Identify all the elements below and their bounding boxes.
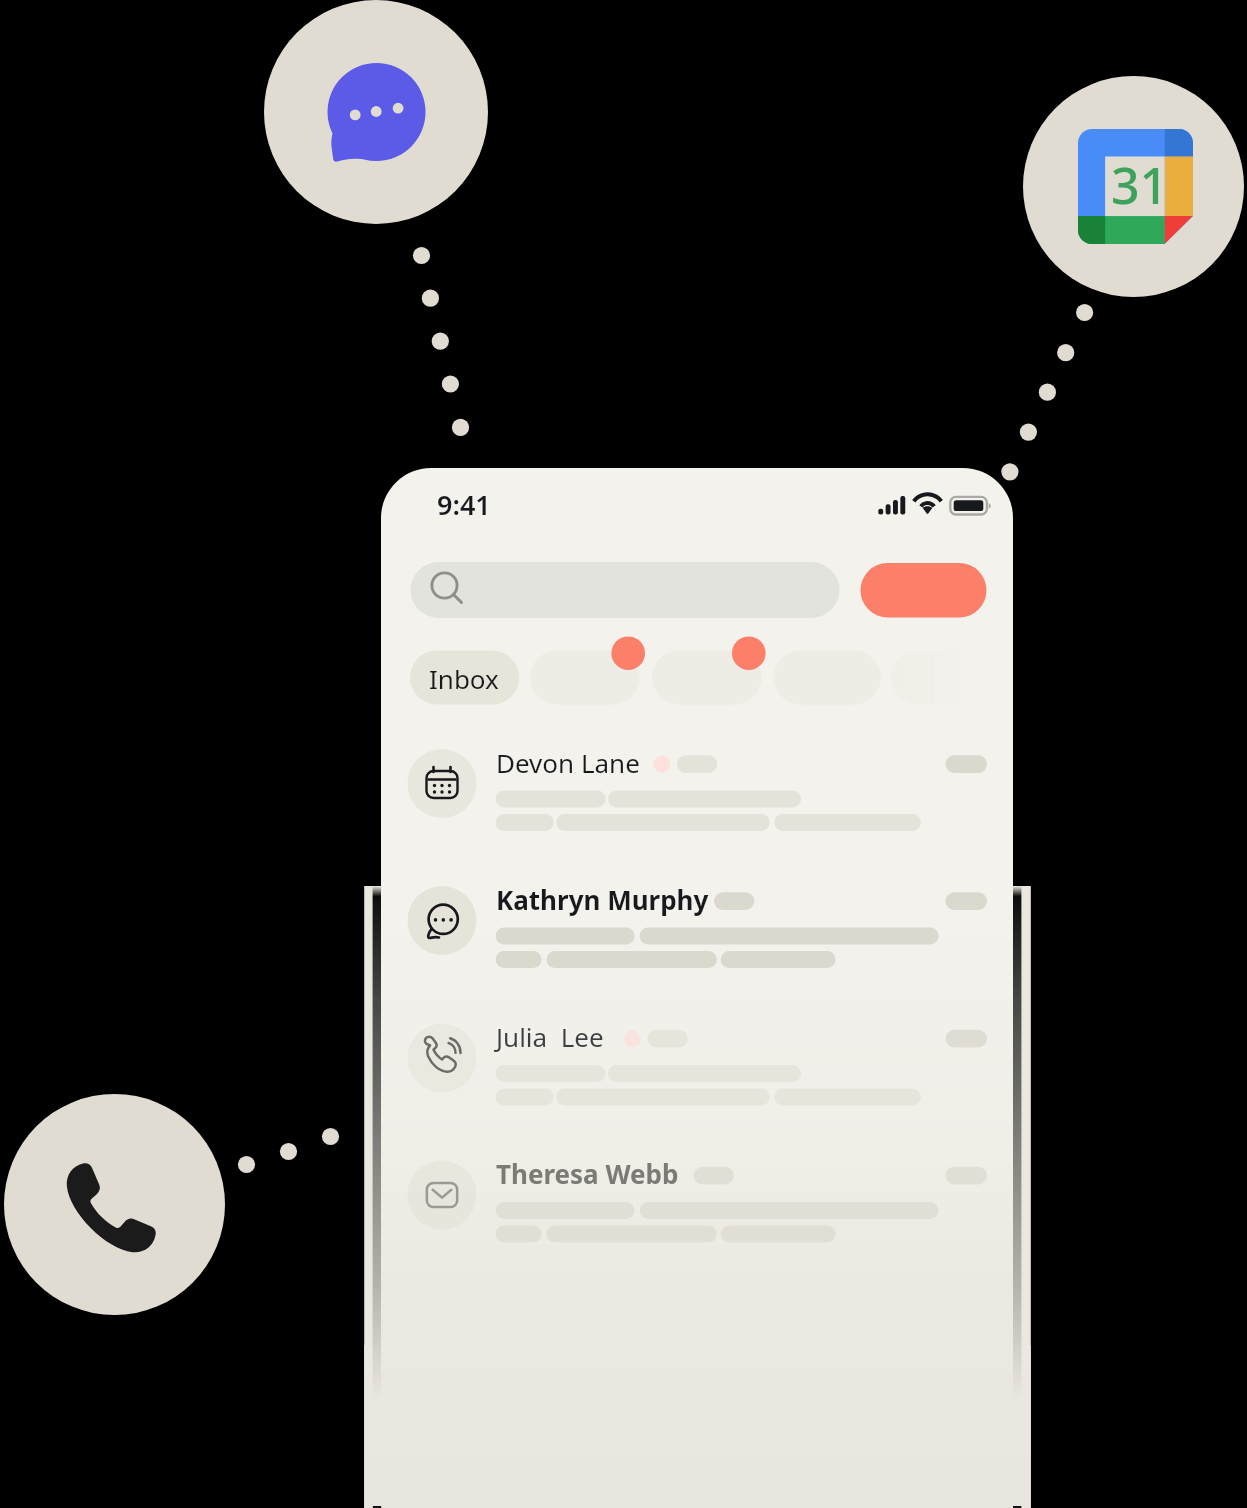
button[interactable]: Julia Lee bbox=[401, 1016, 997, 1134]
button[interactable]: Devon Lane bbox=[401, 742, 997, 860]
button[interactable]: Filter 3 bbox=[652, 651, 762, 705]
staticText: Julia Lee bbox=[496, 1019, 604, 1054]
button[interactable]: Phone bbox=[4, 1094, 225, 1315]
staticText: Devon Lane bbox=[496, 745, 640, 780]
staticText: 31 bbox=[1111, 151, 1169, 219]
button[interactable]: Theresa Webb bbox=[401, 1153, 997, 1271]
staticText: Theresa Webb bbox=[496, 1156, 679, 1191]
button[interactable]: Search bbox=[410, 562, 840, 618]
button[interactable]: Filter 2 bbox=[530, 651, 640, 705]
button[interactable]: Compose bbox=[860, 563, 986, 617]
button[interactable]: Calendar bbox=[1023, 76, 1244, 297]
button[interactable]: Inbox bbox=[410, 651, 519, 705]
staticText: Kathryn Murphy bbox=[496, 882, 709, 917]
button[interactable]: Messages bbox=[264, 0, 488, 224]
button[interactable]: Kathryn Murphy bbox=[401, 879, 997, 997]
staticText: 9:41 bbox=[437, 486, 491, 523]
staticText: Inbox bbox=[429, 661, 499, 696]
